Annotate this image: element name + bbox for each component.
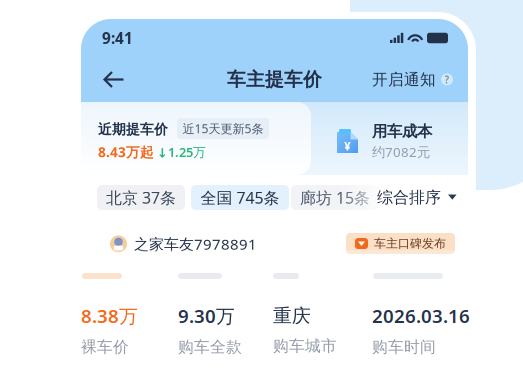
staticText: 8.38万	[81, 303, 138, 328]
staticText: 2026.03.16	[372, 303, 470, 328]
staticText: 开启通知	[372, 70, 436, 89]
staticText: 裸车价	[81, 337, 129, 356]
staticText: 车主提车价	[227, 68, 322, 91]
button[interactable]: 北京 37条	[97, 185, 185, 210]
staticText: 用车成本	[372, 122, 432, 141]
staticText: 约7082元	[372, 143, 430, 161]
staticText: 购车全款	[178, 337, 242, 356]
staticText: 北京 37条	[106, 187, 176, 208]
staticText: 购车时间	[372, 337, 436, 356]
staticText: 重庆	[273, 304, 311, 327]
staticText: 购车城市	[273, 336, 337, 356]
staticText: 全国 745条	[200, 187, 279, 208]
staticText: 综合排序	[377, 188, 441, 207]
staticText: 8.43万起	[98, 143, 154, 161]
staticText: 车主口碑发布	[374, 236, 446, 251]
staticText: ?	[444, 73, 449, 86]
staticText: ¥	[344, 138, 351, 154]
staticText: 9.30万	[178, 303, 235, 328]
button[interactable]: 综合排序	[377, 185, 457, 210]
button[interactable]: 廊坊 15条	[291, 185, 379, 210]
staticText: ↓1.25万	[157, 143, 206, 160]
staticText: 之家车友7978891	[134, 234, 257, 254]
button[interactable]: 全国 745条	[191, 185, 289, 210]
staticText: 廊坊 15条	[300, 187, 370, 208]
button[interactable]: Back	[94, 58, 134, 100]
staticText: 近期提车价	[98, 121, 168, 138]
staticText: 近15天更新5条	[182, 120, 263, 137]
button[interactable]: 开启通知	[372, 58, 453, 100]
staticText: 9:41	[102, 28, 133, 48]
